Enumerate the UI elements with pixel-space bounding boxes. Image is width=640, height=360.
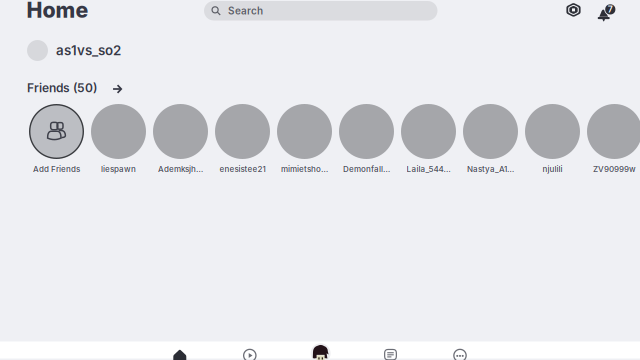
staticText: Add Friends: [33, 164, 80, 174]
button[interactable]: as1vs_so2: [27, 40, 187, 61]
button[interactable]: Robux balance: [566, 3, 581, 17]
staticText: ZV90999w: [593, 164, 636, 174]
staticText: as1vs_so2: [56, 42, 121, 58]
button[interactable]: Add Friends: [29, 107, 84, 179]
staticText: Nastya_A1…: [467, 164, 514, 174]
button[interactable]: Ademksjh…: [153, 107, 208, 179]
staticText: 7: [608, 4, 613, 15]
staticText: mimietsho…: [281, 164, 328, 174]
button[interactable]: Search: [204, 1, 437, 20]
button[interactable]: ZV90999w: [587, 107, 640, 179]
button[interactable]: liespawn: [91, 107, 146, 179]
staticText: liespawn: [101, 164, 136, 174]
staticText: Friends (50): [27, 81, 97, 95]
button[interactable]: mimietsho…: [277, 107, 332, 179]
staticText: Search: [228, 5, 263, 17]
staticText: Laila_544…: [406, 164, 450, 174]
button[interactable]: njulili: [525, 107, 580, 179]
staticText: Home: [26, 0, 88, 23]
button[interactable]: Nastya_A1…: [463, 107, 518, 179]
button[interactable]: Friends (50): [27, 81, 157, 95]
button[interactable]: Demonfall…: [339, 107, 394, 179]
button[interactable]: Avatar: [311, 343, 347, 360]
staticText: enesistee21: [219, 164, 265, 174]
staticText: Demonfall…: [343, 164, 390, 174]
button[interactable]: Chat: [384, 349, 420, 360]
button[interactable]: enesistee21: [215, 107, 270, 179]
staticText: njulili: [542, 164, 562, 174]
button[interactable]: Discover: [243, 349, 279, 360]
button[interactable]: Notifications: [593, 0, 614, 21]
button[interactable]: Laila_544…: [401, 107, 456, 179]
button[interactable]: More: [453, 349, 489, 360]
button[interactable]: Home: [173, 349, 209, 360]
staticText: Ademksjh…: [158, 164, 203, 174]
